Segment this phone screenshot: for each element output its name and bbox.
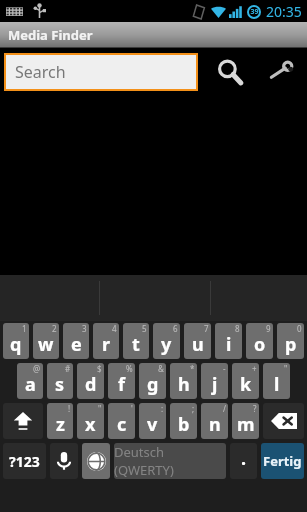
staticText: ; <box>192 403 195 414</box>
staticText: 3 <box>82 323 87 334</box>
staticText: a <box>25 372 36 397</box>
staticText: r <box>102 332 111 357</box>
button[interactable]: ? <box>232 403 259 439</box>
staticText: " <box>98 403 102 414</box>
staticText: Search <box>15 61 66 83</box>
button[interactable]: ! <box>47 403 73 439</box>
button[interactable]: : <box>139 403 166 439</box>
button[interactable]: ?123 <box>3 443 46 479</box>
staticText: * <box>190 363 195 374</box>
button[interactable]: & <box>139 363 166 399</box>
staticText: 39 <box>250 7 259 17</box>
staticText: . <box>241 446 247 471</box>
staticText: h <box>178 372 190 397</box>
button[interactable]: Shift <box>3 403 43 439</box>
staticText: c <box>117 412 127 437</box>
staticText: 1 <box>22 323 27 334</box>
staticText: " <box>284 363 288 374</box>
button[interactable]: 8 <box>215 323 242 359</box>
button[interactable]: " <box>263 363 290 399</box>
staticText: 9 <box>266 323 271 334</box>
staticText: l <box>274 372 280 397</box>
staticText: y <box>161 332 172 357</box>
staticText: v <box>147 412 158 437</box>
button[interactable]: Backspace <box>263 403 304 439</box>
staticText: q <box>10 332 22 357</box>
button[interactable]: # <box>47 363 73 399</box>
button[interactable]: Change keyboard language <box>82 443 110 479</box>
staticText: x <box>85 412 96 437</box>
button[interactable]: * <box>170 363 197 399</box>
button[interactable]: 1 <box>3 323 29 359</box>
button[interactable]: 2 <box>33 323 59 359</box>
staticText: 6 <box>173 323 178 334</box>
staticText: 20:35 <box>266 2 302 21</box>
staticText: ? <box>253 403 257 414</box>
staticText: - <box>223 363 226 374</box>
staticText: + <box>252 363 257 374</box>
staticText: p <box>285 332 297 357</box>
button[interactable]: % <box>108 363 135 399</box>
button[interactable]: Search <box>6 55 196 89</box>
staticText: d <box>85 372 97 397</box>
staticText: g <box>147 372 159 397</box>
button[interactable]: Fertig <box>261 443 304 479</box>
button[interactable]: Tools <box>260 51 302 93</box>
staticText: z <box>56 412 65 437</box>
button[interactable]: Search <box>208 50 252 94</box>
staticText: k <box>240 372 252 397</box>
button[interactable]: 7 <box>184 323 211 359</box>
button[interactable]: 9 <box>246 323 273 359</box>
button[interactable]: ' <box>108 403 135 439</box>
staticText: w <box>38 332 54 357</box>
staticText: ?123 <box>9 452 40 471</box>
staticText: Media Finder <box>8 26 93 44</box>
staticText: 4 <box>112 323 117 334</box>
button[interactable]: . <box>230 443 257 479</box>
button[interactable]: $ <box>77 363 104 399</box>
staticText: o <box>254 332 266 357</box>
button[interactable]: 6 <box>153 323 180 359</box>
staticText: Fertig <box>263 452 302 470</box>
staticText: Deutsch (QWERTY) <box>114 443 226 479</box>
staticText: 2 <box>52 323 57 334</box>
staticText: j <box>212 372 218 397</box>
staticText: : <box>161 403 164 414</box>
button[interactable]: 3 <box>63 323 89 359</box>
staticText: s <box>55 372 65 397</box>
button[interactable]: Voice input <box>50 443 78 479</box>
staticText: n <box>209 412 221 437</box>
staticText: 0 <box>297 323 302 334</box>
staticText: b <box>178 412 190 437</box>
staticText: 5 <box>142 323 147 334</box>
button[interactable]: / <box>201 403 228 439</box>
button[interactable]: 4 <box>93 323 119 359</box>
staticText: $ <box>97 363 102 374</box>
staticText: f <box>118 372 125 397</box>
staticText: % <box>126 363 133 374</box>
staticText: 7 <box>204 323 209 334</box>
button[interactable]: ; <box>170 403 197 439</box>
staticText: e <box>71 332 82 357</box>
staticText: # <box>65 363 71 374</box>
button[interactable]: " <box>77 403 104 439</box>
button[interactable]: @ <box>17 363 43 399</box>
button[interactable]: Deutsch (QWERTY) <box>114 443 226 479</box>
staticText: ' <box>131 403 133 414</box>
staticText: ! <box>68 403 71 414</box>
staticText: t <box>132 332 140 357</box>
staticText: @ <box>33 363 41 374</box>
staticText: i <box>226 332 232 357</box>
button[interactable]: + <box>232 363 259 399</box>
staticText: & <box>158 363 164 374</box>
staticText: m <box>237 412 255 437</box>
staticText: 8 <box>235 323 240 334</box>
button[interactable]: 0 <box>277 323 304 359</box>
staticText: / <box>223 403 226 414</box>
button[interactable]: 5 <box>123 323 149 359</box>
staticText: u <box>192 332 204 357</box>
button[interactable]: - <box>201 363 228 399</box>
